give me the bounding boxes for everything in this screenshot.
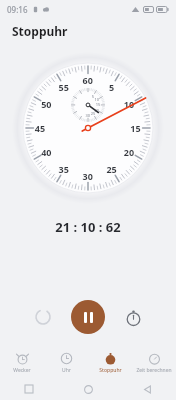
staticText: Wecker xyxy=(13,367,31,374)
button[interactable]: Startseite xyxy=(71,378,105,400)
staticText: Uhr xyxy=(62,367,71,374)
button[interactable]: Stoppuhr xyxy=(88,348,132,378)
button[interactable]: Wecker xyxy=(0,348,44,378)
staticText: Zeit berechnen xyxy=(136,367,172,374)
button[interactable]: Runde xyxy=(116,300,150,334)
button[interactable]: Pause xyxy=(71,300,105,334)
staticText: 09:16 xyxy=(7,4,28,15)
staticText: Stoppuhr xyxy=(12,23,68,39)
button[interactable]: Uhr xyxy=(44,348,88,378)
staticText: 21 : 10 : 62 xyxy=(55,218,121,236)
button[interactable]: Zurück xyxy=(130,378,164,400)
button[interactable]: Übersicht xyxy=(12,378,46,400)
button[interactable]: Zeit berechnen xyxy=(132,348,176,378)
button[interactable]: Zurücksetzen xyxy=(26,300,60,334)
staticText: Stoppuhr xyxy=(99,367,122,374)
